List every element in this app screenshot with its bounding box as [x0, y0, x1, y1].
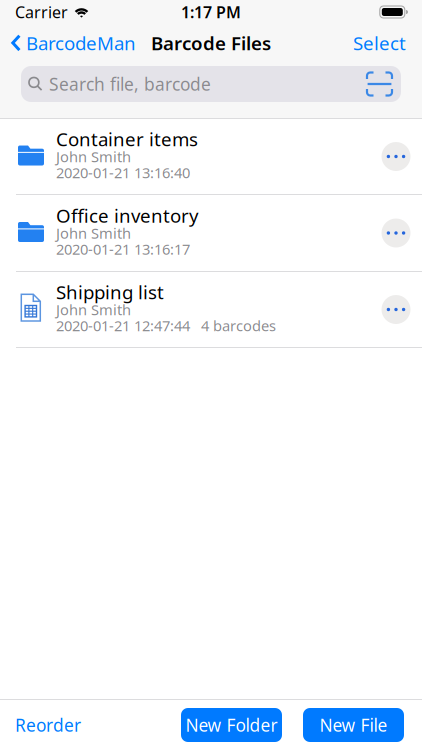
button[interactable]: Container items [0, 119, 422, 195]
button[interactable]: Reorder [0, 700, 96, 750]
button[interactable]: Scan barcode [367, 69, 401, 98]
button[interactable]: More options [374, 211, 418, 255]
staticText: Shipping list [56, 280, 164, 304]
staticText: Container items [56, 127, 198, 151]
staticText: New File [319, 713, 387, 736]
staticText: 1:17 PM [181, 1, 241, 23]
button[interactable]: New File [303, 708, 404, 742]
button[interactable]: More options [374, 134, 418, 178]
button[interactable]: BarcodeMan [0, 24, 144, 62]
staticText: 2020-01-21 13:16:40 [56, 163, 190, 182]
staticText: Carrier [15, 1, 68, 23]
staticText: Barcode Files [151, 31, 271, 55]
staticText: 2020-01-21 13:16:17 [56, 239, 190, 259]
staticText: 2020-01-21 12:47:44 [56, 316, 190, 335]
button[interactable]: New Folder [181, 708, 282, 742]
button[interactable]: More options [374, 287, 418, 331]
staticText: Reorder [15, 713, 81, 736]
staticText: John Smith [56, 300, 131, 319]
staticText: Select [353, 31, 406, 55]
staticText: BarcodeMan [26, 31, 136, 55]
staticText: 4 barcodes [201, 316, 276, 335]
staticText: New Folder [185, 713, 277, 736]
staticText: John Smith [56, 223, 131, 243]
button[interactable]: Select [339, 24, 422, 62]
staticText: Office inventory [56, 203, 199, 228]
staticText: Search file, barcode [49, 72, 211, 95]
staticText: John Smith [56, 147, 131, 166]
button[interactable]: Shipping list [0, 272, 422, 348]
button[interactable]: Office inventory [0, 195, 422, 272]
